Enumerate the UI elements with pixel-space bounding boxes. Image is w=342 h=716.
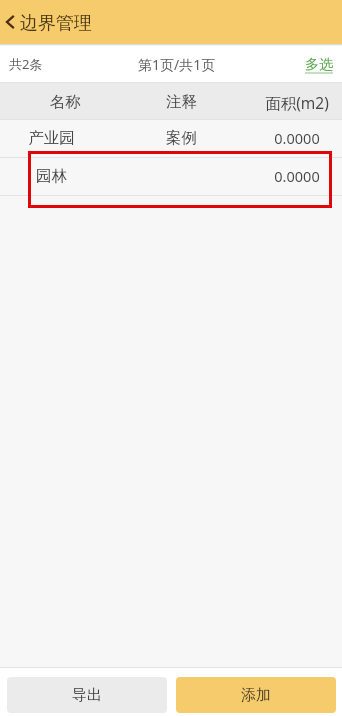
staticText: 导出 bbox=[72, 686, 102, 705]
staticText: 多选 bbox=[305, 56, 333, 74]
staticText: 添加 bbox=[241, 686, 271, 705]
button[interactable]: 多选 bbox=[296, 45, 342, 81]
staticText: 注释 bbox=[166, 92, 197, 112]
staticText: 0.0000 bbox=[274, 166, 320, 186]
staticText: 产业园 bbox=[28, 128, 75, 148]
staticText: 第1页/共1页 bbox=[138, 55, 216, 74]
button[interactable]: 导出 bbox=[7, 677, 167, 713]
button[interactable]: 产业园 bbox=[0, 120, 342, 157]
staticText: 面积(m2) bbox=[265, 92, 329, 113]
staticText: 园林 bbox=[36, 166, 67, 186]
staticText: 共2条 bbox=[9, 55, 43, 73]
staticText: 边界管理 bbox=[20, 12, 92, 35]
button[interactable]: 园林 bbox=[0, 158, 342, 195]
button[interactable]: 添加 bbox=[176, 677, 336, 713]
staticText: 名称 bbox=[50, 92, 81, 112]
staticText: 0.0000 bbox=[274, 128, 320, 148]
staticText: 案例 bbox=[166, 128, 197, 148]
button[interactable]: Back, 边界管理 bbox=[0, 0, 100, 44]
